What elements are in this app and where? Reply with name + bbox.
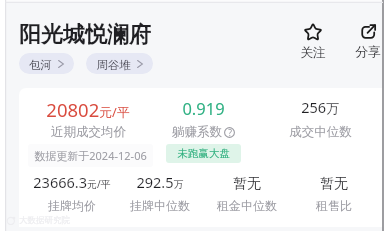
staticText: 大数据研究院 — [19, 215, 70, 226]
staticText: 暂无 — [233, 175, 261, 193]
staticText: 未跑赢大盘 — [177, 147, 230, 160]
staticText: 暂无 — [320, 175, 348, 193]
staticText: 20802元/平 — [46, 97, 130, 122]
staticText: 包河 — [29, 58, 52, 72]
button[interactable]: 暂无 — [137, 172, 357, 216]
staticText: 阳光城悦澜府 — [19, 21, 151, 49]
staticText: 近期成交均价 — [51, 124, 126, 140]
staticText: 躺赚系数 — [172, 124, 222, 140]
button[interactable]: 23666.3元/平 — [0, 172, 182, 216]
button[interactable]: 包河 — [19, 53, 74, 74]
staticText: 租金中位数 — [217, 198, 277, 213]
button[interactable]: 20802元/平 — [0, 97, 198, 142]
button[interactable]: 关注 — [294, 22, 332, 61]
button[interactable]: 暂无 — [224, 172, 387, 216]
button[interactable]: 0.919 — [93, 97, 313, 142]
button[interactable]: 292.5万 — [50, 172, 270, 216]
staticText: 租售比 — [316, 198, 352, 213]
staticText: 分享 — [355, 44, 381, 60]
staticText: 关注 — [300, 45, 326, 61]
button[interactable]: 未跑赢大盘 — [166, 144, 241, 163]
staticText: 256万 — [301, 97, 339, 117]
staticText: 周谷堆 — [96, 58, 131, 72]
staticText: 0.919 — [182, 97, 225, 119]
staticText: 挂牌均价 — [48, 198, 96, 213]
staticText: 成交中位数 — [289, 124, 352, 140]
button[interactable]: 数据更新于2024-12-06 — [28, 144, 153, 167]
button[interactable]: 256万 — [210, 97, 387, 142]
staticText: 292.5万 — [136, 172, 184, 192]
staticText: ? — [228, 127, 232, 138]
staticText: 数据更新于2024-12-06 — [34, 148, 147, 163]
staticText: 挂牌中位数 — [130, 198, 190, 213]
staticText: 23666.3元/平 — [33, 172, 111, 192]
button[interactable]: 分享 — [349, 22, 387, 60]
button[interactable]: 周谷堆 — [86, 53, 153, 74]
